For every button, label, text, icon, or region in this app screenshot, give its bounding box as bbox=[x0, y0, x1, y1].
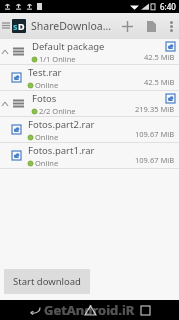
staticText: Fotos bbox=[32, 92, 57, 105]
staticText: 42.5 MiB bbox=[144, 77, 175, 87]
staticText: 109.67 MiB bbox=[135, 129, 175, 139]
button[interactable]: Home bbox=[68, 300, 112, 320]
button[interactable]: Back bbox=[12, 300, 56, 320]
button[interactable]: Default package bbox=[0, 39, 179, 64]
staticText: Online bbox=[35, 80, 59, 90]
staticText: 219.35 MiB bbox=[135, 104, 175, 114]
staticText: Start download bbox=[13, 275, 81, 288]
button[interactable]: Add bbox=[115, 13, 139, 39]
staticText: s bbox=[13, 20, 18, 32]
button[interactable]: More options bbox=[163, 13, 179, 39]
button[interactable]: Fotos bbox=[0, 91, 179, 116]
staticText: 6:40 bbox=[160, 1, 176, 12]
staticText: Fotos.part1.rar bbox=[28, 144, 95, 157]
staticText: ShareDownloa... bbox=[31, 19, 115, 33]
button[interactable]: Navigation drawer bbox=[0, 13, 12, 39]
button[interactable]: Documents bbox=[139, 13, 163, 39]
staticText: 42.5 MiB bbox=[144, 52, 175, 62]
button[interactable]: Recent apps bbox=[123, 300, 167, 320]
staticText: D bbox=[18, 20, 25, 32]
button[interactable]: Fotos.part1.rar bbox=[0, 143, 179, 168]
staticText: Online bbox=[35, 158, 59, 168]
staticText: 2/2 Online bbox=[39, 106, 76, 116]
staticText: 1/1 Online bbox=[39, 54, 76, 64]
button[interactable]: Fotos.part2.rar bbox=[0, 117, 179, 142]
staticText: Fotos.part2.rar bbox=[28, 118, 95, 131]
button[interactable]: Start download bbox=[4, 269, 90, 294]
staticText: 109.67 MiB bbox=[135, 155, 175, 165]
staticText: Online bbox=[35, 132, 59, 142]
staticText: Test.rar bbox=[28, 66, 62, 79]
staticText: Default package bbox=[32, 40, 105, 53]
staticText: GetAndroid.iR bbox=[44, 301, 135, 319]
button[interactable]: Test.rar bbox=[0, 65, 179, 90]
